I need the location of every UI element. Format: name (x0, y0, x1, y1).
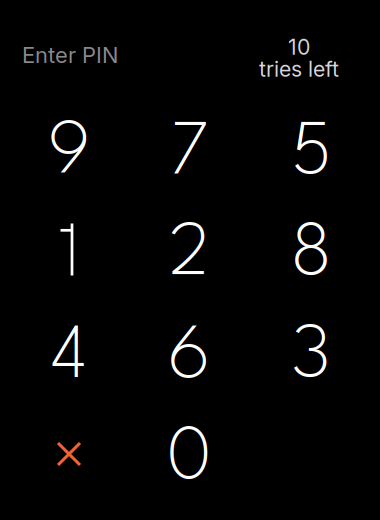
staticText: 9 (47, 118, 90, 190)
staticText: tries left (259, 56, 339, 82)
staticText: 5 (291, 118, 332, 190)
button[interactable]: 2 (129, 205, 250, 307)
button[interactable]: 5 (251, 103, 372, 205)
staticText: 0 (167, 424, 212, 496)
staticText: 6 (168, 322, 211, 394)
button[interactable]: 3 (251, 307, 372, 409)
button[interactable]: 9 (8, 103, 130, 205)
button[interactable]: 4 (8, 307, 130, 409)
staticText: 2 (169, 220, 210, 292)
button[interactable]: 0 (129, 409, 250, 511)
staticText: 8 (290, 220, 332, 292)
button[interactable]: 7 (129, 103, 250, 205)
staticText: Enter PIN (22, 42, 118, 68)
button[interactable]: Delete (8, 403, 130, 505)
button[interactable]: 8 (251, 205, 372, 307)
staticText: 7 (170, 118, 209, 190)
staticText: 4 (50, 322, 87, 394)
button[interactable]: 6 (129, 307, 250, 409)
staticText: 3 (291, 322, 331, 394)
staticText: 10 (288, 34, 310, 60)
button[interactable]: 1 (6, 198, 128, 300)
